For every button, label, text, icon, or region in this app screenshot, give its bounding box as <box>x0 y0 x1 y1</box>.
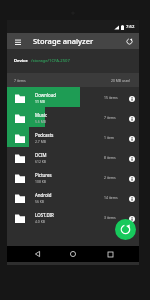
button[interactable]: Details <box>129 116 135 122</box>
button[interactable]: Download <box>7 87 139 107</box>
button[interactable]: Recent apps <box>103 247 117 261</box>
staticText: 108 KB <box>35 179 47 184</box>
staticText: 7 items <box>14 78 26 83</box>
button[interactable]: Rescan storage <box>115 219 136 240</box>
staticText: 1 item <box>104 135 115 140</box>
button[interactable]: Back <box>30 247 44 261</box>
button[interactable]: Home <box>66 247 80 261</box>
staticText: 2 items <box>104 175 116 180</box>
button[interactable]: Refresh <box>123 35 136 48</box>
staticText: 2.7 MB <box>35 139 46 144</box>
staticText: 612 KB <box>35 159 47 164</box>
staticText: 14 items <box>104 195 118 200</box>
staticText: 56 KB <box>35 199 45 204</box>
staticText: DCIM <box>35 152 47 158</box>
button[interactable]: Podcasts <box>7 127 139 147</box>
button[interactable]: Details <box>129 96 135 102</box>
staticText: Download <box>35 92 56 98</box>
staticText: Android <box>35 192 52 198</box>
staticText: 7:52 <box>126 24 135 30</box>
button[interactable]: Android <box>7 187 139 207</box>
button[interactable]: Details <box>129 216 135 222</box>
staticText: 4.0 KB <box>35 219 45 224</box>
staticText: /storage/1CFA-2507 <box>31 58 70 64</box>
staticText: 11 MB <box>35 99 46 104</box>
button[interactable]: Details <box>129 156 135 162</box>
button[interactable]: Music <box>7 107 139 127</box>
button[interactable]: DCIM <box>7 147 139 167</box>
staticText: Pictures <box>35 172 52 178</box>
staticText: Storage analyzer <box>33 36 94 46</box>
staticText: 20 MB used <box>111 78 130 83</box>
staticText: 5.6 MB <box>35 119 46 124</box>
staticText: Podcasts <box>35 132 54 138</box>
staticText: 8 items <box>104 155 116 160</box>
button[interactable]: Details <box>129 176 135 182</box>
staticText: 7 items <box>104 115 116 120</box>
button[interactable]: Open navigation drawer <box>11 35 24 48</box>
button[interactable]: Details <box>129 196 135 202</box>
button[interactable]: Details <box>129 136 135 142</box>
staticText: LOST.DIR <box>35 212 54 218</box>
staticText: 15 items <box>104 95 118 100</box>
staticText: Music <box>35 112 48 118</box>
button[interactable]: LOST.DIR <box>7 207 139 227</box>
button[interactable]: Pictures <box>7 167 139 187</box>
button[interactable]: Device <box>7 49 139 73</box>
staticText: 3 items <box>104 215 116 220</box>
staticText: Device <box>14 58 28 64</box>
